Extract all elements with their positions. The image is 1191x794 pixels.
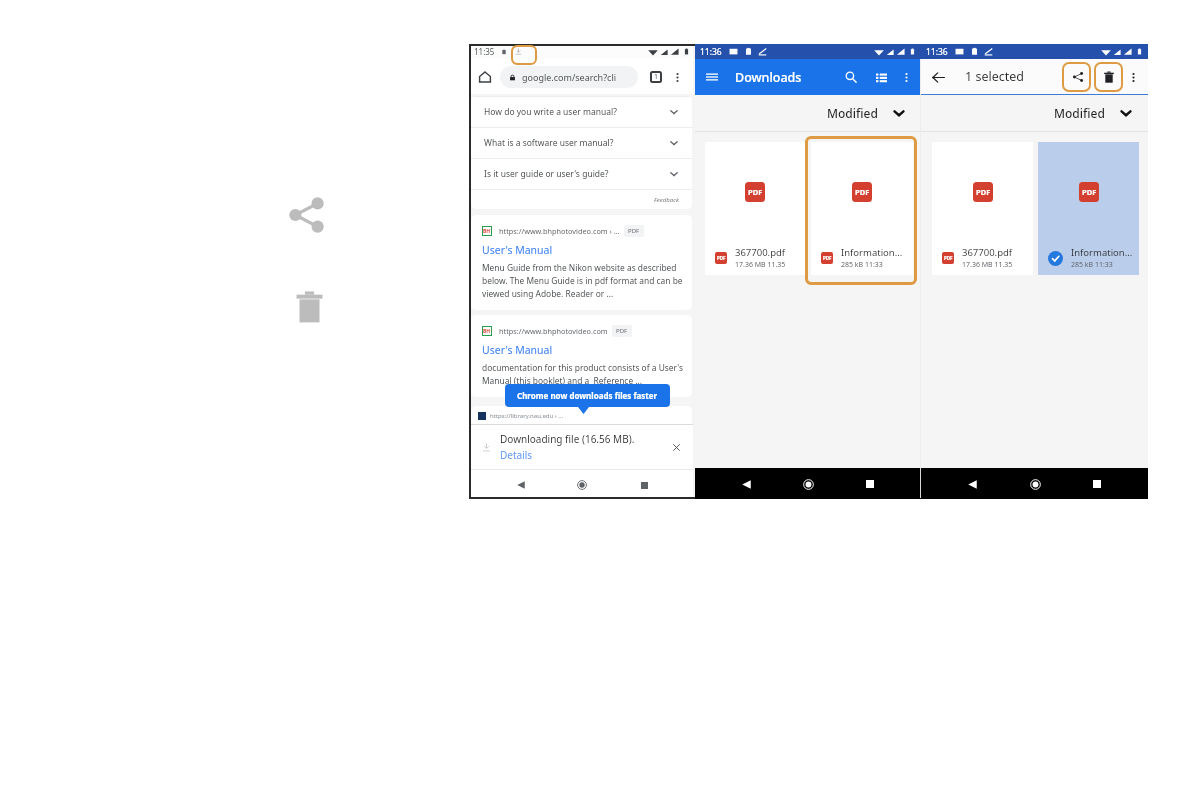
button[interactable]: BH: [471, 315, 692, 397]
staticText: What is a software user manual?: [484, 137, 614, 149]
staticText: User's Manual: [482, 243, 553, 257]
button[interactable]: Home: [1024, 473, 1046, 495]
staticText: documentation for this product consists …: [482, 362, 683, 386]
staticText: Details: [500, 448, 533, 462]
button[interactable]: What is a software user manual?: [471, 128, 692, 158]
button[interactable]: Recents: [1086, 473, 1108, 495]
staticText: 1 selected: [965, 68, 1024, 85]
button[interactable]: BH: [471, 215, 692, 310]
button[interactable]: PDF: [1038, 142, 1139, 275]
button[interactable]: Delete: [296, 290, 323, 326]
staticText: PDF: [748, 187, 763, 197]
button[interactable]: Home: [469, 65, 500, 89]
staticText: Modified: [827, 105, 878, 121]
button[interactable]: Close: [669, 440, 684, 455]
button[interactable]: PDF: [932, 142, 1033, 275]
staticText: Downloads: [735, 69, 802, 86]
staticText: PDF: [855, 187, 870, 197]
staticText: 17.36 MB 11.35: [735, 260, 786, 270]
button[interactable]: google.com/search?cli: [500, 66, 638, 88]
button[interactable]: Back: [735, 473, 757, 495]
button[interactable]: PDF: [811, 142, 913, 275]
button[interactable]: More options: [669, 69, 685, 85]
button[interactable]: Modified: [827, 105, 906, 121]
staticText: PDF: [628, 227, 640, 235]
button[interactable]: Recents: [859, 473, 881, 495]
button[interactable]: More options: [898, 69, 914, 85]
staticText: Modified: [1054, 105, 1105, 121]
staticText: PDF: [616, 327, 628, 335]
staticText: 285 kB 11:33: [841, 260, 883, 270]
button[interactable]: Back: [928, 67, 948, 87]
button[interactable]: Back: [961, 473, 983, 495]
staticText: Downloading file (16.56 MB).: [500, 432, 635, 446]
button[interactable]: Back: [511, 475, 531, 495]
button[interactable]: Share: [1067, 66, 1089, 88]
staticText: Chrome now downloads files faster: [517, 390, 658, 401]
staticText: How do you write a user manual?: [484, 106, 617, 118]
button[interactable]: Home: [572, 475, 592, 495]
button[interactable]: Recents: [634, 475, 654, 495]
button[interactable]: Change view: [871, 67, 891, 87]
staticText: PDF: [823, 255, 832, 261]
staticText: 11:35: [474, 46, 495, 57]
staticText: Feedback: [654, 196, 679, 204]
button[interactable]: Menu: [702, 67, 722, 87]
staticText: 11:36: [926, 46, 948, 58]
button[interactable]: Tabs: [647, 68, 664, 85]
staticText: BH: [483, 328, 491, 335]
button[interactable]: More options: [1125, 69, 1141, 85]
staticText: BH: [483, 228, 491, 235]
button[interactable]: Search: [841, 67, 861, 87]
staticText: https://library.nau.edu › ...: [490, 412, 564, 420]
button[interactable]: Share: [288, 195, 325, 235]
staticText: 1: [654, 72, 659, 82]
staticText: 367700.pdf: [962, 246, 1013, 259]
button[interactable]: How do you write a user manual?: [471, 97, 692, 127]
staticText: Menu Guide from the Nikon website as des…: [482, 262, 683, 299]
button[interactable]: Modified: [1054, 105, 1133, 121]
staticText: PDF: [1082, 187, 1097, 197]
staticText: https://www.bhphotovideo.com › ...: [499, 226, 620, 236]
button[interactable]: Home: [797, 473, 819, 495]
staticText: Information...: [1071, 246, 1133, 259]
staticText: 17.36 MB 11.35: [962, 260, 1013, 270]
staticText: PDF: [944, 255, 953, 261]
staticText: User's Manual: [482, 343, 553, 357]
button[interactable]: Is it user guide or user's guide?: [471, 159, 692, 189]
staticText: https://www.bhphotovideo.com: [499, 326, 608, 336]
button[interactable]: PDF: [705, 142, 805, 275]
staticText: Information...: [841, 246, 903, 259]
staticText: Is it user guide or user's guide?: [484, 168, 609, 180]
staticText: PDF: [717, 255, 726, 261]
staticText: PDF: [976, 187, 991, 197]
staticText: 367700.pdf: [735, 246, 786, 259]
staticText: 11:36: [700, 46, 722, 58]
staticText: google.com/search?cli: [522, 71, 617, 83]
staticText: 285 kB 11:33: [1071, 260, 1113, 270]
button[interactable]: Delete: [1098, 66, 1120, 88]
